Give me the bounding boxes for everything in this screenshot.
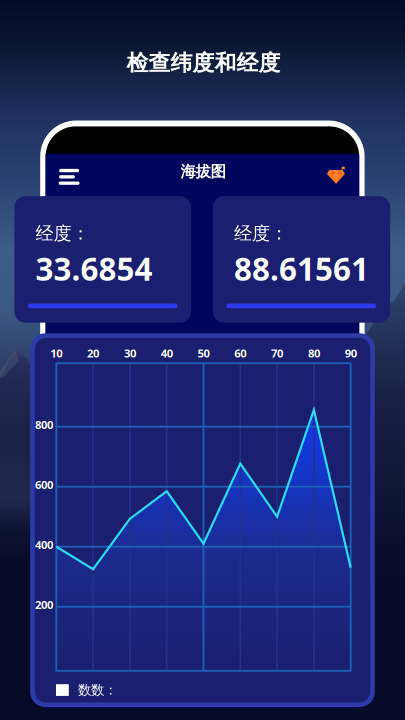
staticText: 10 (50, 345, 62, 361)
staticText: 90 (345, 345, 357, 361)
staticText: 400 (35, 537, 53, 552)
staticText: 检查纬度和经度 (126, 49, 280, 77)
staticText: 80 (308, 345, 320, 361)
button[interactable]: Menu (0, 0, 405, 720)
staticText: 70 (271, 345, 283, 361)
staticText: 33.6854 (35, 247, 152, 290)
staticText: 88.61561 (234, 247, 369, 290)
staticText: 600 (35, 477, 53, 492)
button[interactable]: Premium (0, 0, 405, 720)
staticText: 海拔图 (180, 162, 225, 181)
staticText: 经度： (35, 222, 89, 245)
staticText: 800 (35, 417, 53, 432)
staticText: 200 (35, 597, 53, 612)
staticText: 60 (234, 345, 246, 361)
staticText: 20 (87, 345, 99, 361)
staticText: 50 (197, 345, 209, 361)
staticText: 数数： (78, 682, 117, 698)
staticText: 30 (124, 345, 136, 361)
staticText: 经度： (234, 222, 288, 245)
staticText: 40 (161, 345, 173, 361)
